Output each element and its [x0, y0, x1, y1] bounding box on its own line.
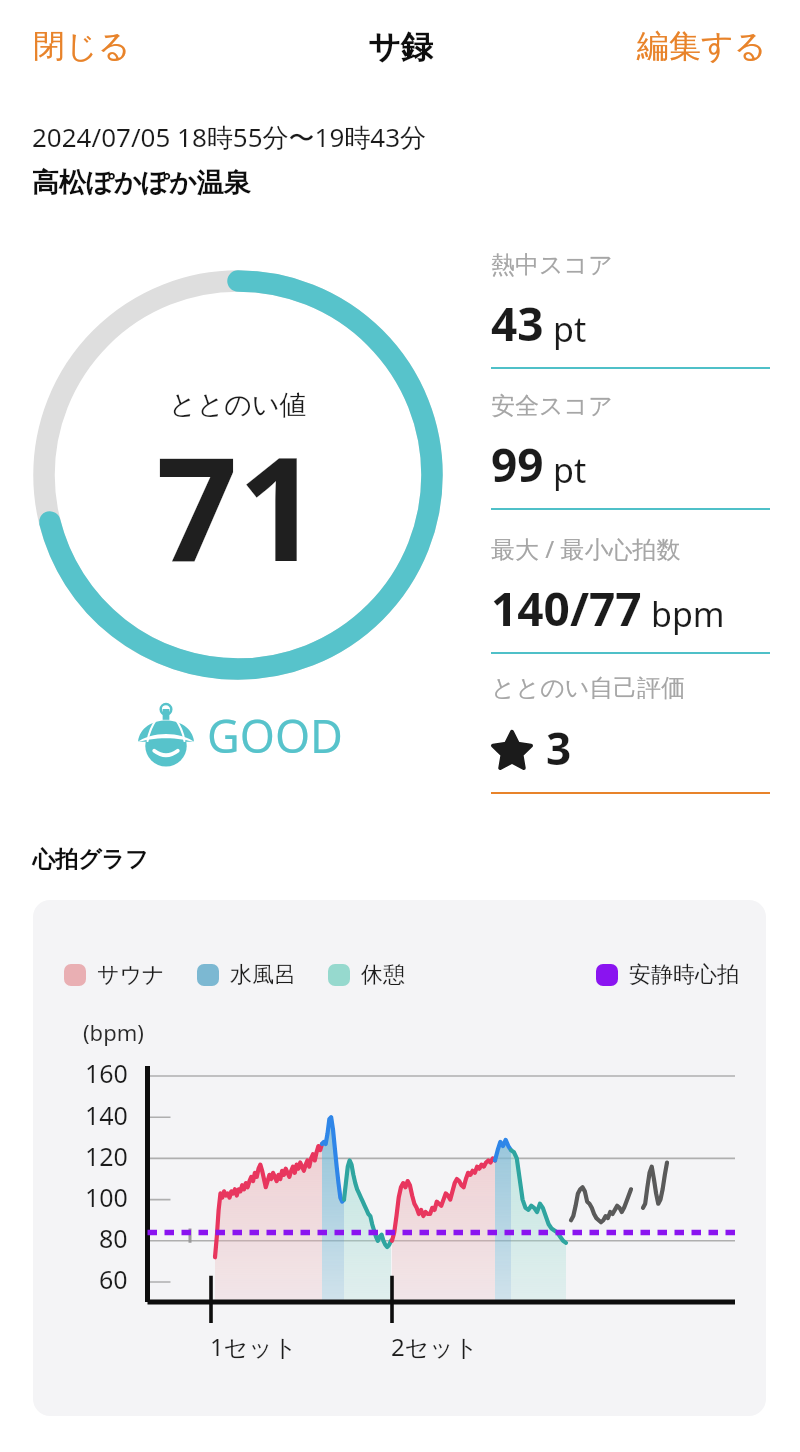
- staticText: bpm: [651, 591, 725, 637]
- staticText: 2セット: [391, 1330, 479, 1363]
- button[interactable]: Totonoi rating: GOOD: [138, 700, 343, 761]
- staticText: サ録: [368, 27, 433, 67]
- button[interactable]: 編集する: [621, 16, 783, 76]
- staticText: 3: [546, 718, 572, 778]
- staticText: 2024/07/05 18時55分〜19時43分: [32, 119, 427, 155]
- staticText: 80: [99, 1221, 128, 1255]
- staticText: 閉じる: [33, 26, 131, 66]
- staticText: 140/77: [491, 577, 642, 640]
- staticText: 高松ぽかぽか温泉: [32, 166, 251, 200]
- staticText: (bpm): [83, 1017, 144, 1047]
- staticText: 熱中スコア: [491, 250, 613, 280]
- staticText: pt: [553, 447, 587, 493]
- other: Totonoi rating: GOOD: [138, 703, 194, 763]
- staticText: 水風呂: [230, 961, 296, 989]
- button[interactable]: 閉じる: [17, 16, 147, 76]
- staticText: 120: [85, 1139, 128, 1173]
- staticText: 60: [99, 1262, 128, 1296]
- staticText: 心拍グラフ: [32, 845, 149, 874]
- staticText: 1セット: [210, 1330, 298, 1363]
- staticText: 100: [85, 1180, 128, 1214]
- staticText: サウナ: [97, 961, 165, 989]
- button[interactable]: Heart rate graph: [33, 900, 766, 1416]
- staticText: ととのい自己評価: [491, 673, 686, 703]
- staticText: GOOD: [207, 705, 343, 766]
- staticText: 安全スコア: [491, 391, 613, 421]
- staticText: pt: [553, 306, 587, 352]
- staticText: 最大 / 最小心拍数: [491, 532, 681, 565]
- staticText: 43: [491, 292, 544, 355]
- staticText: 160: [85, 1056, 128, 1090]
- staticText: 140: [85, 1098, 128, 1132]
- staticText: 休憩: [361, 961, 405, 989]
- staticText: 安静時心拍: [629, 961, 739, 989]
- staticText: ととのい値: [169, 388, 307, 422]
- staticText: 99: [491, 433, 544, 496]
- staticText: 編集する: [637, 26, 767, 66]
- other: Heart rate graph: [33, 900, 766, 1416]
- staticText: 71: [156, 408, 320, 603]
